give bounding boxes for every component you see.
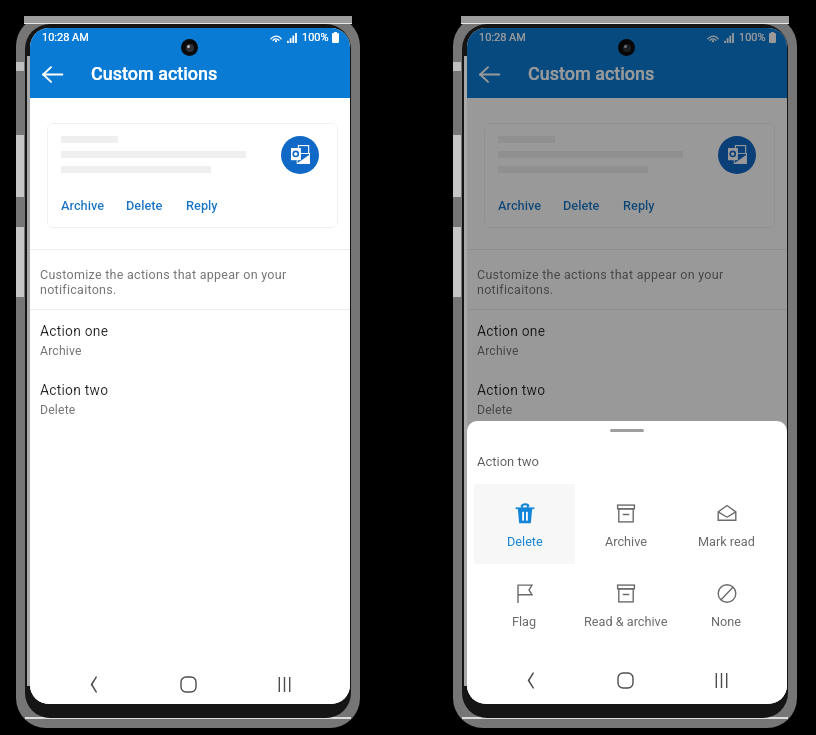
button[interactable]: Back xyxy=(71,662,116,704)
staticText: Flag xyxy=(512,614,537,629)
button[interactable]: Read & archive xyxy=(575,564,676,644)
staticText: Delete xyxy=(126,198,163,213)
staticText: Custom actions xyxy=(91,63,218,84)
staticText: Read & archive xyxy=(584,614,668,629)
button[interactable]: None xyxy=(676,564,777,644)
button[interactable]: Flag xyxy=(474,564,575,644)
button[interactable]: Delete xyxy=(563,198,600,213)
staticText: Archive xyxy=(498,198,542,213)
staticText: Mark read xyxy=(698,534,755,549)
button[interactable]: Recent apps xyxy=(699,658,744,703)
staticText: Custom actions xyxy=(528,63,655,84)
staticText: Action two xyxy=(40,382,109,398)
button[interactable]: Action two xyxy=(30,380,350,425)
staticText: 10:28 AM xyxy=(479,31,526,44)
staticText: Action two xyxy=(477,382,546,398)
staticText: Action two xyxy=(477,454,539,469)
staticText: Action one xyxy=(40,323,109,339)
staticText: Customize the actions that appear on you… xyxy=(40,267,287,297)
button[interactable]: Reply xyxy=(623,198,655,213)
staticText: Archive xyxy=(477,344,519,358)
button[interactable]: Action two xyxy=(467,380,787,425)
button[interactable]: Home xyxy=(603,658,648,703)
button[interactable]: Action one xyxy=(467,321,787,366)
button[interactable]: Back xyxy=(508,658,553,703)
button[interactable]: Mark read xyxy=(676,484,777,564)
button[interactable]: Dismiss xyxy=(467,28,787,704)
button[interactable]: Back xyxy=(30,52,74,96)
button[interactable]: Delete xyxy=(126,198,163,213)
staticText: 100% xyxy=(739,31,766,44)
staticText: Customize the actions that appear on you… xyxy=(477,267,724,297)
staticText: Reply xyxy=(186,198,218,213)
staticText: 100% xyxy=(302,31,329,44)
staticText: Delete xyxy=(507,534,543,549)
staticText: Archive xyxy=(605,534,647,549)
button[interactable]: Delete xyxy=(474,484,575,564)
button[interactable]: Back xyxy=(467,52,511,96)
button[interactable]: Home xyxy=(166,662,211,704)
staticText: Delete xyxy=(477,403,513,417)
staticText: Action one xyxy=(477,323,546,339)
staticText: 10:28 AM xyxy=(42,31,89,44)
button[interactable]: Action one xyxy=(30,321,350,366)
staticText: Delete xyxy=(563,198,600,213)
staticText: Archive xyxy=(61,198,105,213)
button[interactable]: Archive xyxy=(575,484,676,564)
staticText: Reply xyxy=(623,198,655,213)
button[interactable]: Reply xyxy=(186,198,218,213)
button[interactable]: Archive xyxy=(498,198,542,213)
staticText: Delete xyxy=(40,403,76,417)
staticText: None xyxy=(711,614,742,629)
button[interactable]: Recent apps xyxy=(262,662,307,704)
staticText: Archive xyxy=(40,344,82,358)
button[interactable]: Archive xyxy=(61,198,105,213)
